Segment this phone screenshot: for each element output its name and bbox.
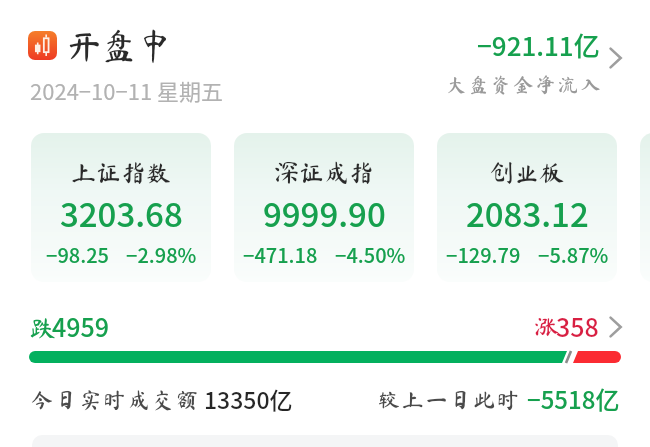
button[interactable]: 科创板: [640, 133, 650, 282]
staticText: 上证指数: [71, 160, 172, 185]
staticText: 创业板: [489, 160, 565, 185]
staticText: 跌: [30, 315, 56, 340]
other: 涨跌详情: [609, 317, 622, 337]
button[interactable]: 上证指数: [31, 133, 211, 282]
button[interactable]: [25, 310, 120, 344]
staticText: −5518亿: [527, 381, 620, 416]
staticText: 深证成指: [274, 160, 375, 185]
staticText: 3203.68: [60, 189, 183, 237]
staticText: 大盘资金净流入: [446, 74, 603, 94]
button[interactable]: 开盘中: [28, 27, 174, 63]
staticText: −4.50%: [335, 240, 406, 269]
staticText: 9999.90: [263, 189, 386, 237]
staticText: 今日实时成交额: [31, 389, 201, 411]
staticText: 13350亿: [204, 382, 293, 415]
staticText: −98.25: [46, 240, 109, 269]
staticText: −129.79: [446, 240, 521, 269]
staticText: 较上一日此时: [378, 389, 521, 411]
button[interactable]: [430, 20, 610, 100]
staticText: 开盘中: [65, 27, 174, 63]
staticText: −921.11亿: [477, 26, 600, 64]
staticText: −5.87%: [538, 240, 609, 269]
other: 涨跌比例: [29, 351, 621, 363]
staticText: 4959: [52, 308, 110, 344]
staticText: 涨: [534, 314, 560, 339]
button[interactable]: [28, 385, 296, 413]
other: 资金流入详情: [609, 48, 622, 68]
staticText: −471.18: [243, 240, 318, 269]
staticText: 2024−10−11 星期五: [30, 74, 224, 106]
staticText: 358: [556, 308, 599, 344]
staticText: −2.98%: [126, 240, 197, 269]
button[interactable]: [375, 385, 623, 413]
staticText: 2083.12: [466, 189, 589, 237]
button[interactable]: 创业板: [437, 133, 617, 282]
button[interactable]: 深证成指: [234, 133, 414, 282]
button[interactable]: [528, 310, 624, 344]
